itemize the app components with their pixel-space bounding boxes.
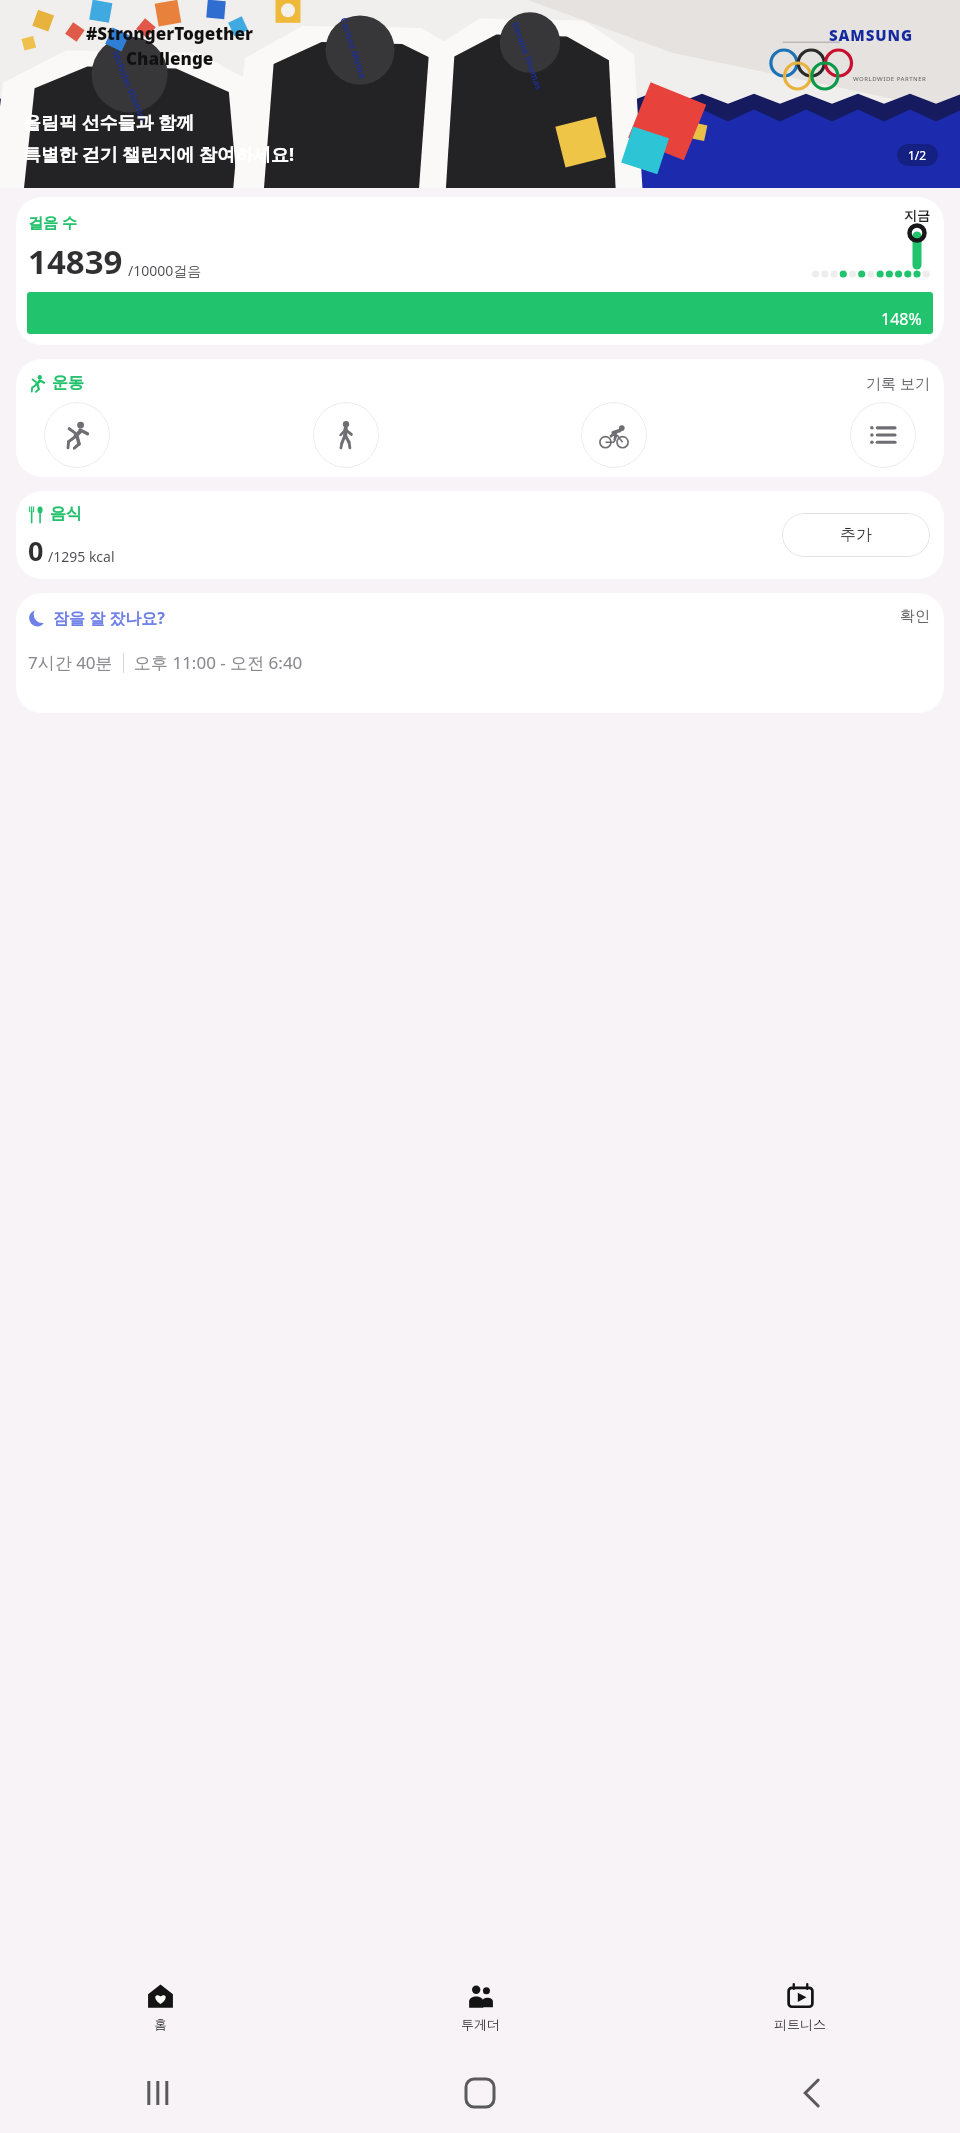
button[interactable]: 잠을 잘 잤나요? bbox=[16, 593, 944, 713]
button[interactable]: 음식 bbox=[16, 491, 944, 579]
staticText: 걸음 수 bbox=[28, 212, 77, 232]
button[interactable]: 추가 bbox=[782, 513, 930, 557]
button[interactable]: 148% bbox=[27, 292, 933, 334]
button[interactable]: 확인 bbox=[900, 607, 930, 626]
staticText: 특별한 걷기 챌린지에 참여하세요! bbox=[23, 142, 295, 167]
staticText: 기록 보기 bbox=[866, 373, 930, 393]
staticText: 잠을 잘 잤나요? bbox=[53, 607, 165, 629]
staticText: SAMSUNG bbox=[829, 25, 913, 45]
staticText: 확인 bbox=[900, 607, 930, 626]
button[interactable]: Run bbox=[44, 402, 110, 468]
staticText: 148% bbox=[881, 308, 922, 330]
button[interactable]: Cycle bbox=[581, 402, 647, 468]
staticText: #StrongerTogether bbox=[86, 22, 253, 45]
button[interactable]: SAMSUNG bbox=[0, 0, 960, 188]
button[interactable]: 홈 bbox=[0, 1961, 320, 2053]
staticText: 운동 bbox=[52, 373, 84, 393]
staticText: 피트니스 bbox=[774, 2016, 826, 2032]
staticText: 홈 bbox=[154, 2016, 167, 2032]
staticText: 7시간 40분 bbox=[28, 651, 113, 674]
staticText: 0 bbox=[28, 532, 44, 569]
staticText: Nicholas Dlamini bbox=[110, 48, 150, 123]
button[interactable]: 운동 bbox=[16, 359, 944, 477]
button[interactable]: Walk bbox=[313, 402, 379, 468]
button[interactable]: 투게더 bbox=[320, 1961, 640, 2053]
staticText: /10000걸음 bbox=[128, 261, 202, 280]
staticText: 올림픽 선수들과 함께 bbox=[23, 110, 195, 135]
button[interactable]: 1/2 bbox=[897, 144, 938, 166]
staticText: 투게더 bbox=[461, 2016, 500, 2032]
staticText: Challenge bbox=[126, 47, 214, 70]
staticText: Geraint Thomas bbox=[510, 20, 546, 92]
button[interactable]: More exercises bbox=[850, 402, 916, 468]
staticText: Carissa Moore bbox=[338, 16, 370, 80]
button[interactable]: 걸음 수 bbox=[16, 197, 944, 345]
staticText: 지금 bbox=[904, 207, 930, 223]
staticText: 14839 bbox=[28, 239, 123, 284]
button[interactable]: 피트니스 bbox=[640, 1961, 960, 2053]
staticText: /1295 kcal bbox=[48, 547, 115, 566]
staticText: 추가 bbox=[840, 525, 872, 545]
button[interactable]: 기록 보기 bbox=[866, 373, 930, 393]
staticText: 오후 11:00 - 오전 6:40 bbox=[134, 651, 303, 674]
staticText: WORLDWIDE PARTNER bbox=[853, 75, 927, 83]
staticText: 음식 bbox=[50, 504, 82, 524]
staticText: 1/2 bbox=[908, 147, 927, 163]
